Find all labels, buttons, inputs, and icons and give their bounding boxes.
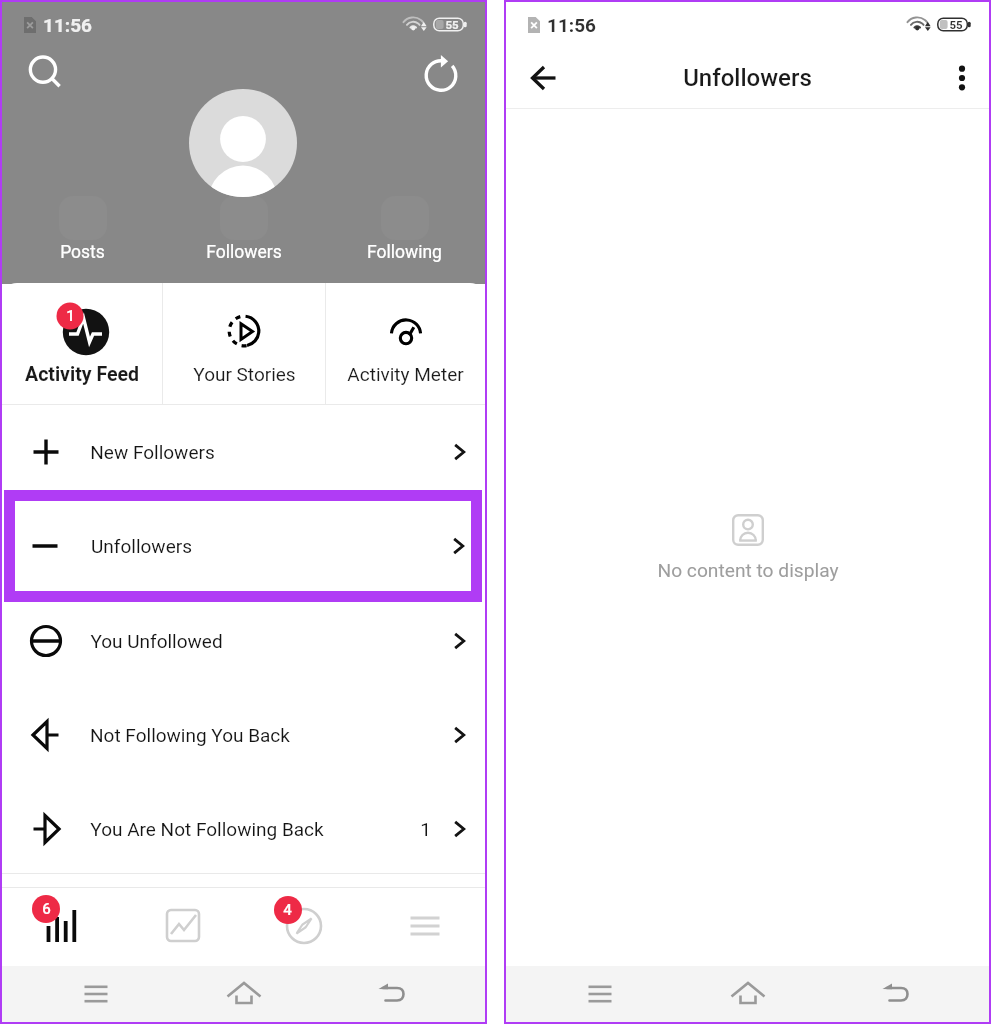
staticText: 55 — [949, 18, 963, 31]
button[interactable]: Back — [864, 966, 926, 1022]
button[interactable]: New Followers — [2, 405, 485, 499]
button[interactable]: Charts — [122, 888, 243, 964]
staticText: 4 — [283, 901, 292, 919]
staticText: 11:56 — [43, 14, 92, 36]
staticText: Activity Feed — [25, 363, 139, 386]
staticText: 11:56 — [547, 14, 596, 36]
button[interactable]: You Unfollowed — [2, 594, 485, 688]
button[interactable]: Unfollowers — [15, 501, 471, 591]
staticText: Your Stories — [193, 363, 296, 385]
button[interactable]: Activity Meter — [326, 283, 485, 405]
staticText: Not Following You Back — [90, 724, 290, 746]
button[interactable]: Back — [521, 55, 567, 101]
button[interactable]: Not Following You Back — [2, 688, 485, 782]
staticText: 1 — [66, 307, 75, 325]
staticText: New Followers — [90, 441, 215, 463]
button[interactable]: Search — [22, 50, 68, 96]
staticText: No content to display — [657, 559, 839, 582]
staticText: You Unfollowed — [90, 630, 223, 652]
button[interactable]: Home — [213, 966, 275, 1022]
staticText: 55 — [445, 18, 459, 31]
button[interactable]: Your Stories — [163, 283, 325, 405]
staticText: Followers — [206, 242, 282, 263]
button[interactable]: More options — [939, 55, 985, 101]
button[interactable]: More — [364, 888, 485, 964]
button[interactable]: Back — [360, 966, 422, 1022]
button[interactable]: Refresh — [418, 51, 464, 97]
button[interactable]: Home — [717, 966, 779, 1022]
button[interactable]: 1 — [2, 283, 162, 405]
button[interactable]: You Are Not Following Back — [2, 782, 485, 876]
button[interactable]: Statistics — [2, 888, 122, 964]
staticText: Activity Meter — [347, 363, 464, 385]
staticText: Following — [367, 242, 442, 263]
button[interactable]: Recent apps — [65, 966, 127, 1022]
staticText: 6 — [42, 900, 51, 918]
button[interactable]: Discover — [243, 888, 364, 964]
staticText: Posts — [60, 242, 105, 263]
staticText: Unfollowers — [91, 535, 192, 557]
staticText: 1 — [420, 818, 431, 840]
staticText: You Are Not Following Back — [90, 818, 324, 840]
staticText: Unfollowers — [683, 64, 812, 92]
button[interactable]: Recent apps — [569, 966, 631, 1022]
